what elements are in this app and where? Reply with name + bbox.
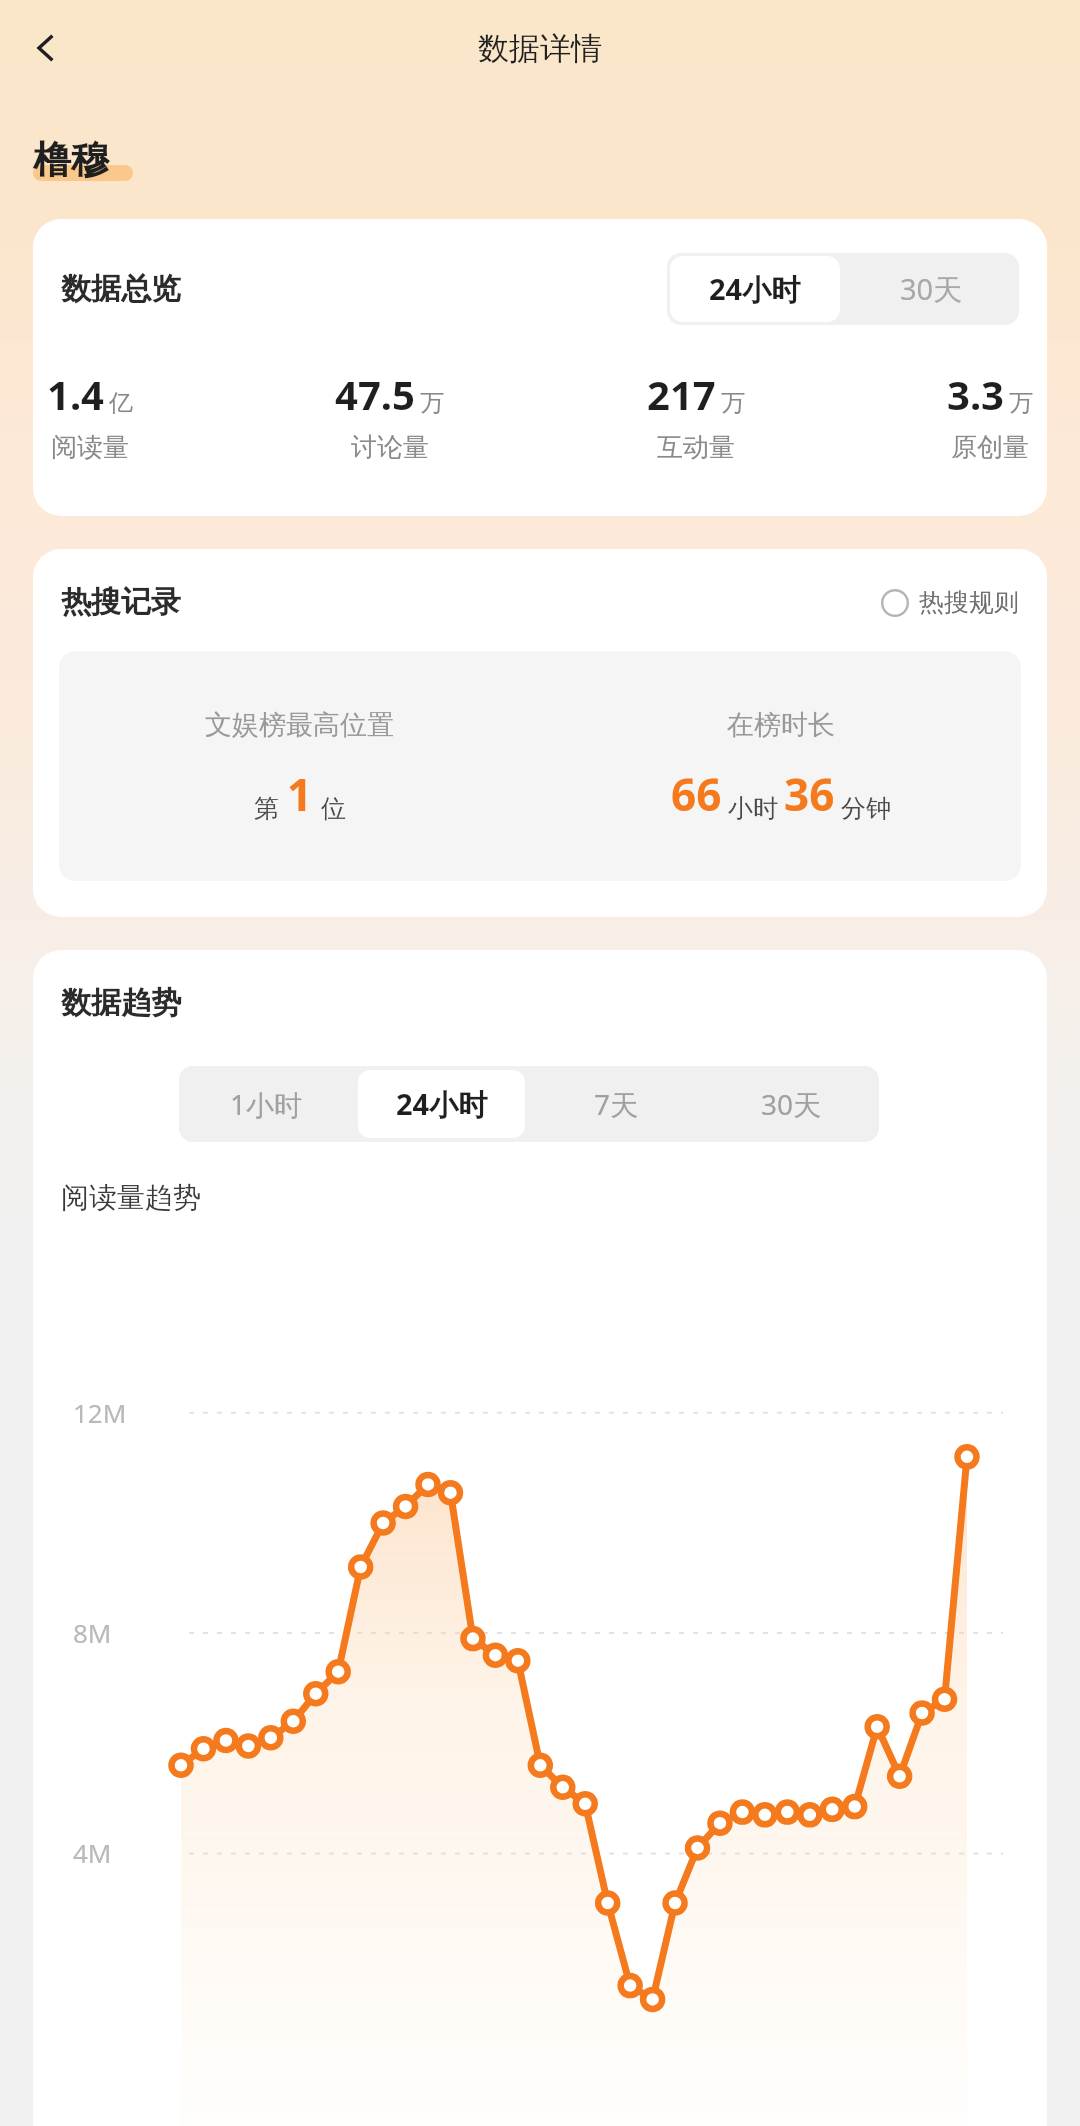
- button[interactable]: 24小时: [670, 256, 840, 322]
- button[interactable]: 24小时: [358, 1070, 525, 1138]
- staticText: 万: [1009, 388, 1033, 418]
- staticText: 3.3: [947, 367, 1004, 421]
- staticText: 数据详情: [478, 29, 602, 68]
- staticText: 橹穆: [33, 136, 109, 184]
- staticText: 阅读量: [51, 431, 129, 464]
- staticText: 数据总览: [61, 270, 181, 308]
- staticText: 热搜记录: [61, 583, 181, 621]
- staticText: 1: [287, 764, 313, 824]
- staticText: 1.4: [47, 367, 104, 421]
- button[interactable]: 30天: [843, 253, 1019, 325]
- staticText: 30天: [900, 269, 963, 309]
- staticText: 217: [647, 367, 716, 421]
- staticText: 第: [254, 793, 279, 824]
- staticText: 小时: [728, 793, 778, 824]
- staticText: 66: [671, 764, 722, 824]
- button[interactable]: 7天: [533, 1070, 700, 1138]
- staticText: 阅读量趋势: [61, 1180, 201, 1215]
- staticText: 24小时: [396, 1084, 488, 1124]
- staticText: 亿: [109, 388, 133, 418]
- staticText: 4M: [73, 1835, 112, 1870]
- button[interactable]: 热搜规则: [881, 587, 1019, 618]
- staticText: 数据趋势: [61, 984, 181, 1022]
- staticText: 分钟: [841, 793, 891, 824]
- staticText: 47.5: [335, 367, 415, 421]
- button[interactable]: Back: [14, 16, 78, 80]
- staticText: 在榜时长: [727, 708, 835, 742]
- staticText: 1小时: [230, 1085, 303, 1123]
- staticText: 文娱榜最高位置: [205, 708, 394, 742]
- staticText: 位: [321, 793, 346, 824]
- staticText: 万: [420, 388, 444, 418]
- staticText: 讨论量: [351, 431, 429, 464]
- staticText: 万: [721, 388, 745, 418]
- staticText: 互动量: [657, 431, 735, 464]
- staticText: 热搜规则: [919, 587, 1019, 618]
- staticText: 12M: [73, 1395, 127, 1430]
- staticText: 7天: [594, 1085, 639, 1123]
- button[interactable]: 1小时: [183, 1070, 350, 1138]
- button[interactable]: 30天: [708, 1070, 875, 1138]
- staticText: 36: [784, 764, 835, 824]
- staticText: 原创量: [951, 431, 1029, 464]
- staticText: 24小时: [709, 269, 801, 309]
- staticText: 30天: [761, 1085, 822, 1123]
- staticText: 8M: [73, 1615, 112, 1650]
